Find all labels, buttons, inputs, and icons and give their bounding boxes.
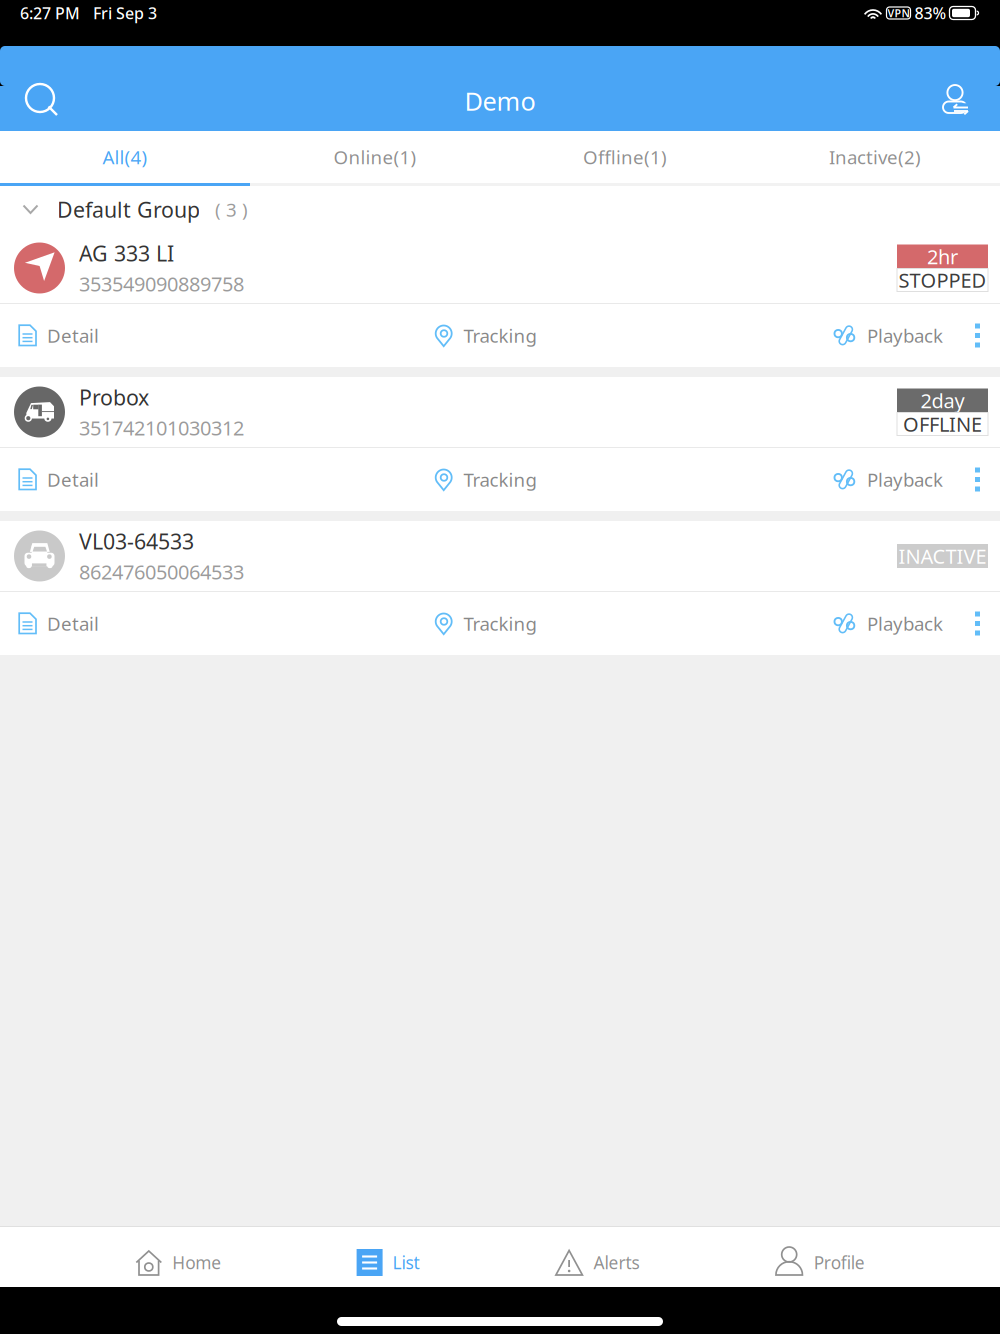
staticText: Demo [464,84,535,118]
staticText: Tracking [463,323,536,348]
staticText: Detail [47,467,99,492]
staticText: Probox [79,383,149,411]
button[interactable]: More options [943,449,980,510]
staticText: Tracking [463,611,536,636]
staticText: INACTIVE [898,543,986,569]
staticText: OFFLINE [903,411,982,437]
staticText: 353549090889758 [79,270,244,297]
staticText: Online(1) [333,145,416,169]
button[interactable]: Home [135,1227,221,1287]
staticText: Home [172,1251,221,1274]
button[interactable]: Playback [833,304,943,367]
button[interactable]: More options [943,593,980,654]
button[interactable]: Tracking [395,304,536,367]
staticText: AG 333 LI [79,239,174,267]
staticText: Tracking [463,467,536,492]
staticText: VL03-64533 [79,527,194,555]
button[interactable]: Inactive(2) [750,131,1000,183]
staticText: All(4) [102,145,147,169]
staticText: Detail [47,611,99,636]
button[interactable]: Alerts [555,1227,639,1287]
staticText: Detail [47,323,99,348]
staticText: Profile [814,1251,865,1274]
button[interactable]: Playback [833,592,943,655]
button[interactable]: Default Group [0,186,1000,233]
button[interactable]: Offline(1) [500,131,750,183]
staticText: VPN [887,6,909,20]
staticText: 6:27 PM [20,2,80,24]
button[interactable]: All(4) [0,131,250,183]
staticText: Playback [867,323,943,348]
button[interactable]: Tracking [395,448,536,511]
staticText: 862476050064533 [79,558,244,585]
button[interactable]: Detail [18,304,99,367]
staticText: Playback [867,467,943,492]
button[interactable]: Detail [18,448,99,511]
staticText: Fri Sep 3 [93,2,157,24]
button[interactable]: Online(1) [250,131,500,183]
button[interactable]: Switch account [935,78,987,124]
staticText: Alerts [593,1251,639,1274]
staticText: 2hr [927,243,958,270]
button[interactable]: More options [943,305,980,366]
staticText: Playback [867,611,943,636]
staticText: Offline(1) [583,145,667,169]
staticText: STOPPED [898,267,986,293]
staticText: 351742101030312 [79,414,244,441]
staticText: List [393,1251,420,1274]
staticText: ( 3 ) [215,197,248,222]
button[interactable]: Detail [18,592,99,655]
button[interactable]: Playback [833,448,943,511]
button[interactable]: List [357,1227,420,1287]
staticText: Default Group [57,195,200,224]
staticText: 83% [914,2,946,24]
button[interactable]: Tracking [395,592,536,655]
staticText: 2day [920,387,964,414]
staticText: Inactive(2) [829,145,921,169]
button[interactable]: Profile [775,1227,865,1287]
button[interactable]: Search [18,76,68,126]
